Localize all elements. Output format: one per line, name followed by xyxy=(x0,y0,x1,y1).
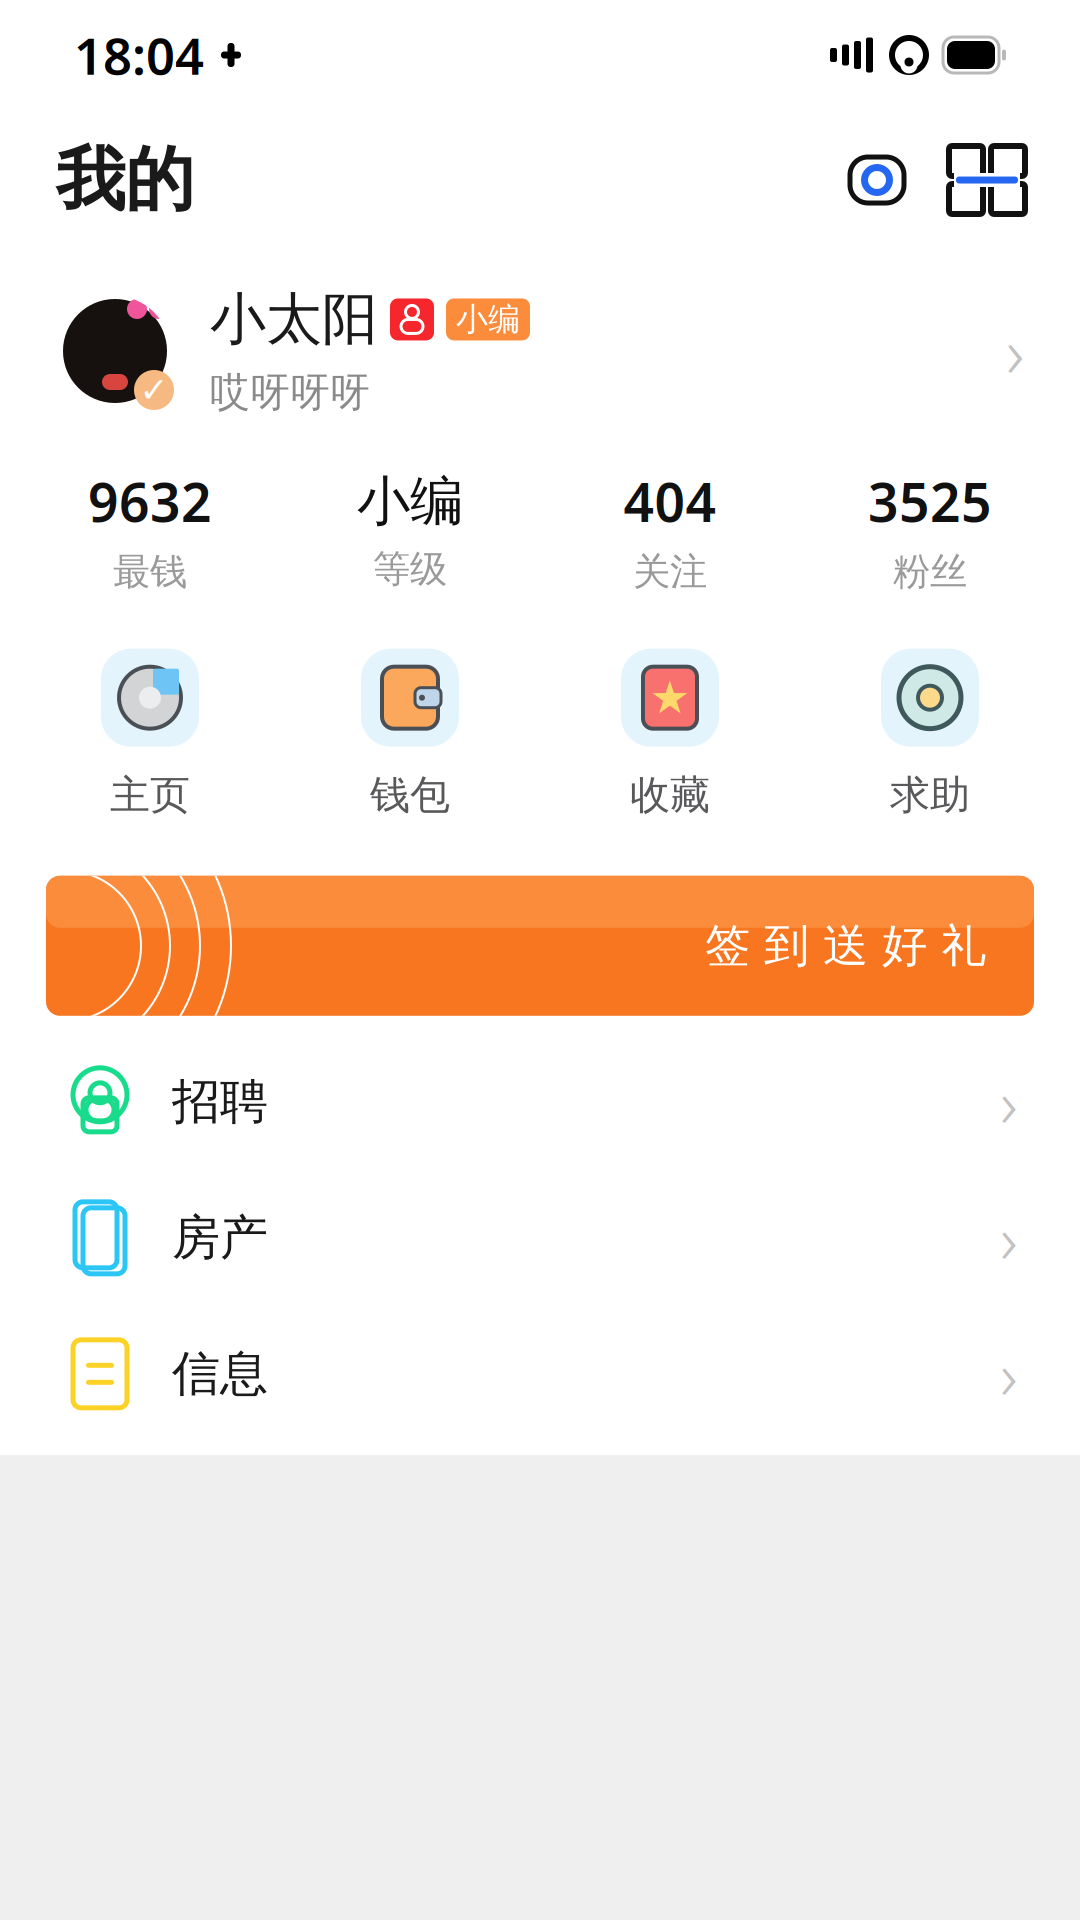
staticText: ★ xyxy=(649,672,690,723)
staticText: 我的 xyxy=(56,137,194,223)
staticText: › xyxy=(1006,305,1024,397)
button[interactable]: 会员中心 xyxy=(840,143,914,217)
button[interactable]: 求助 xyxy=(800,649,1060,820)
staticText: 求助 xyxy=(890,771,970,820)
staticText: 小编 xyxy=(456,300,520,339)
staticText: 小编 xyxy=(357,469,463,534)
staticText: 404 xyxy=(623,466,716,537)
staticText: 关注 xyxy=(633,549,707,595)
staticText: 房产 xyxy=(172,1208,268,1267)
staticText: 18:04 xyxy=(74,21,204,89)
staticText: 最钱 xyxy=(113,549,187,595)
staticText: 9632 xyxy=(88,466,212,537)
staticText: 小太阳 xyxy=(210,285,378,354)
staticText: 钱包 xyxy=(370,771,450,820)
staticText: 等级 xyxy=(373,546,447,592)
button[interactable]: 3525 xyxy=(800,466,1060,595)
staticText: 3525 xyxy=(868,466,992,537)
staticText: 签 到 送 好 礼 xyxy=(705,918,986,974)
button[interactable]: 签 到 送 好 礼 xyxy=(0,876,1080,1016)
staticText: 粉丝 xyxy=(893,549,967,595)
staticText: ✓ xyxy=(139,370,168,410)
button[interactable]: 小编 xyxy=(280,469,540,592)
button[interactable]: ✓ xyxy=(0,276,1080,426)
staticText: 哎呀呀呀 xyxy=(210,368,370,417)
staticText: 招聘 xyxy=(172,1072,268,1131)
button[interactable]: 钱包 xyxy=(280,649,540,820)
staticText: › xyxy=(1000,1329,1018,1418)
staticText: › xyxy=(1000,1057,1018,1146)
button[interactable]: 主页 xyxy=(20,649,280,820)
button[interactable]: ★ xyxy=(540,649,800,820)
button[interactable]: 404 xyxy=(540,466,800,595)
staticText: 收藏 xyxy=(630,771,710,820)
staticText: 信息 xyxy=(172,1344,268,1403)
button[interactable]: 招聘 xyxy=(0,1034,1080,1170)
button[interactable]: 扫一扫 xyxy=(950,143,1024,217)
staticText: › xyxy=(1000,1193,1018,1282)
button[interactable]: 9632 xyxy=(20,466,280,595)
button[interactable]: 信息 xyxy=(0,1306,1080,1442)
button[interactable]: 房产 xyxy=(0,1170,1080,1306)
staticText: 主页 xyxy=(110,771,190,820)
